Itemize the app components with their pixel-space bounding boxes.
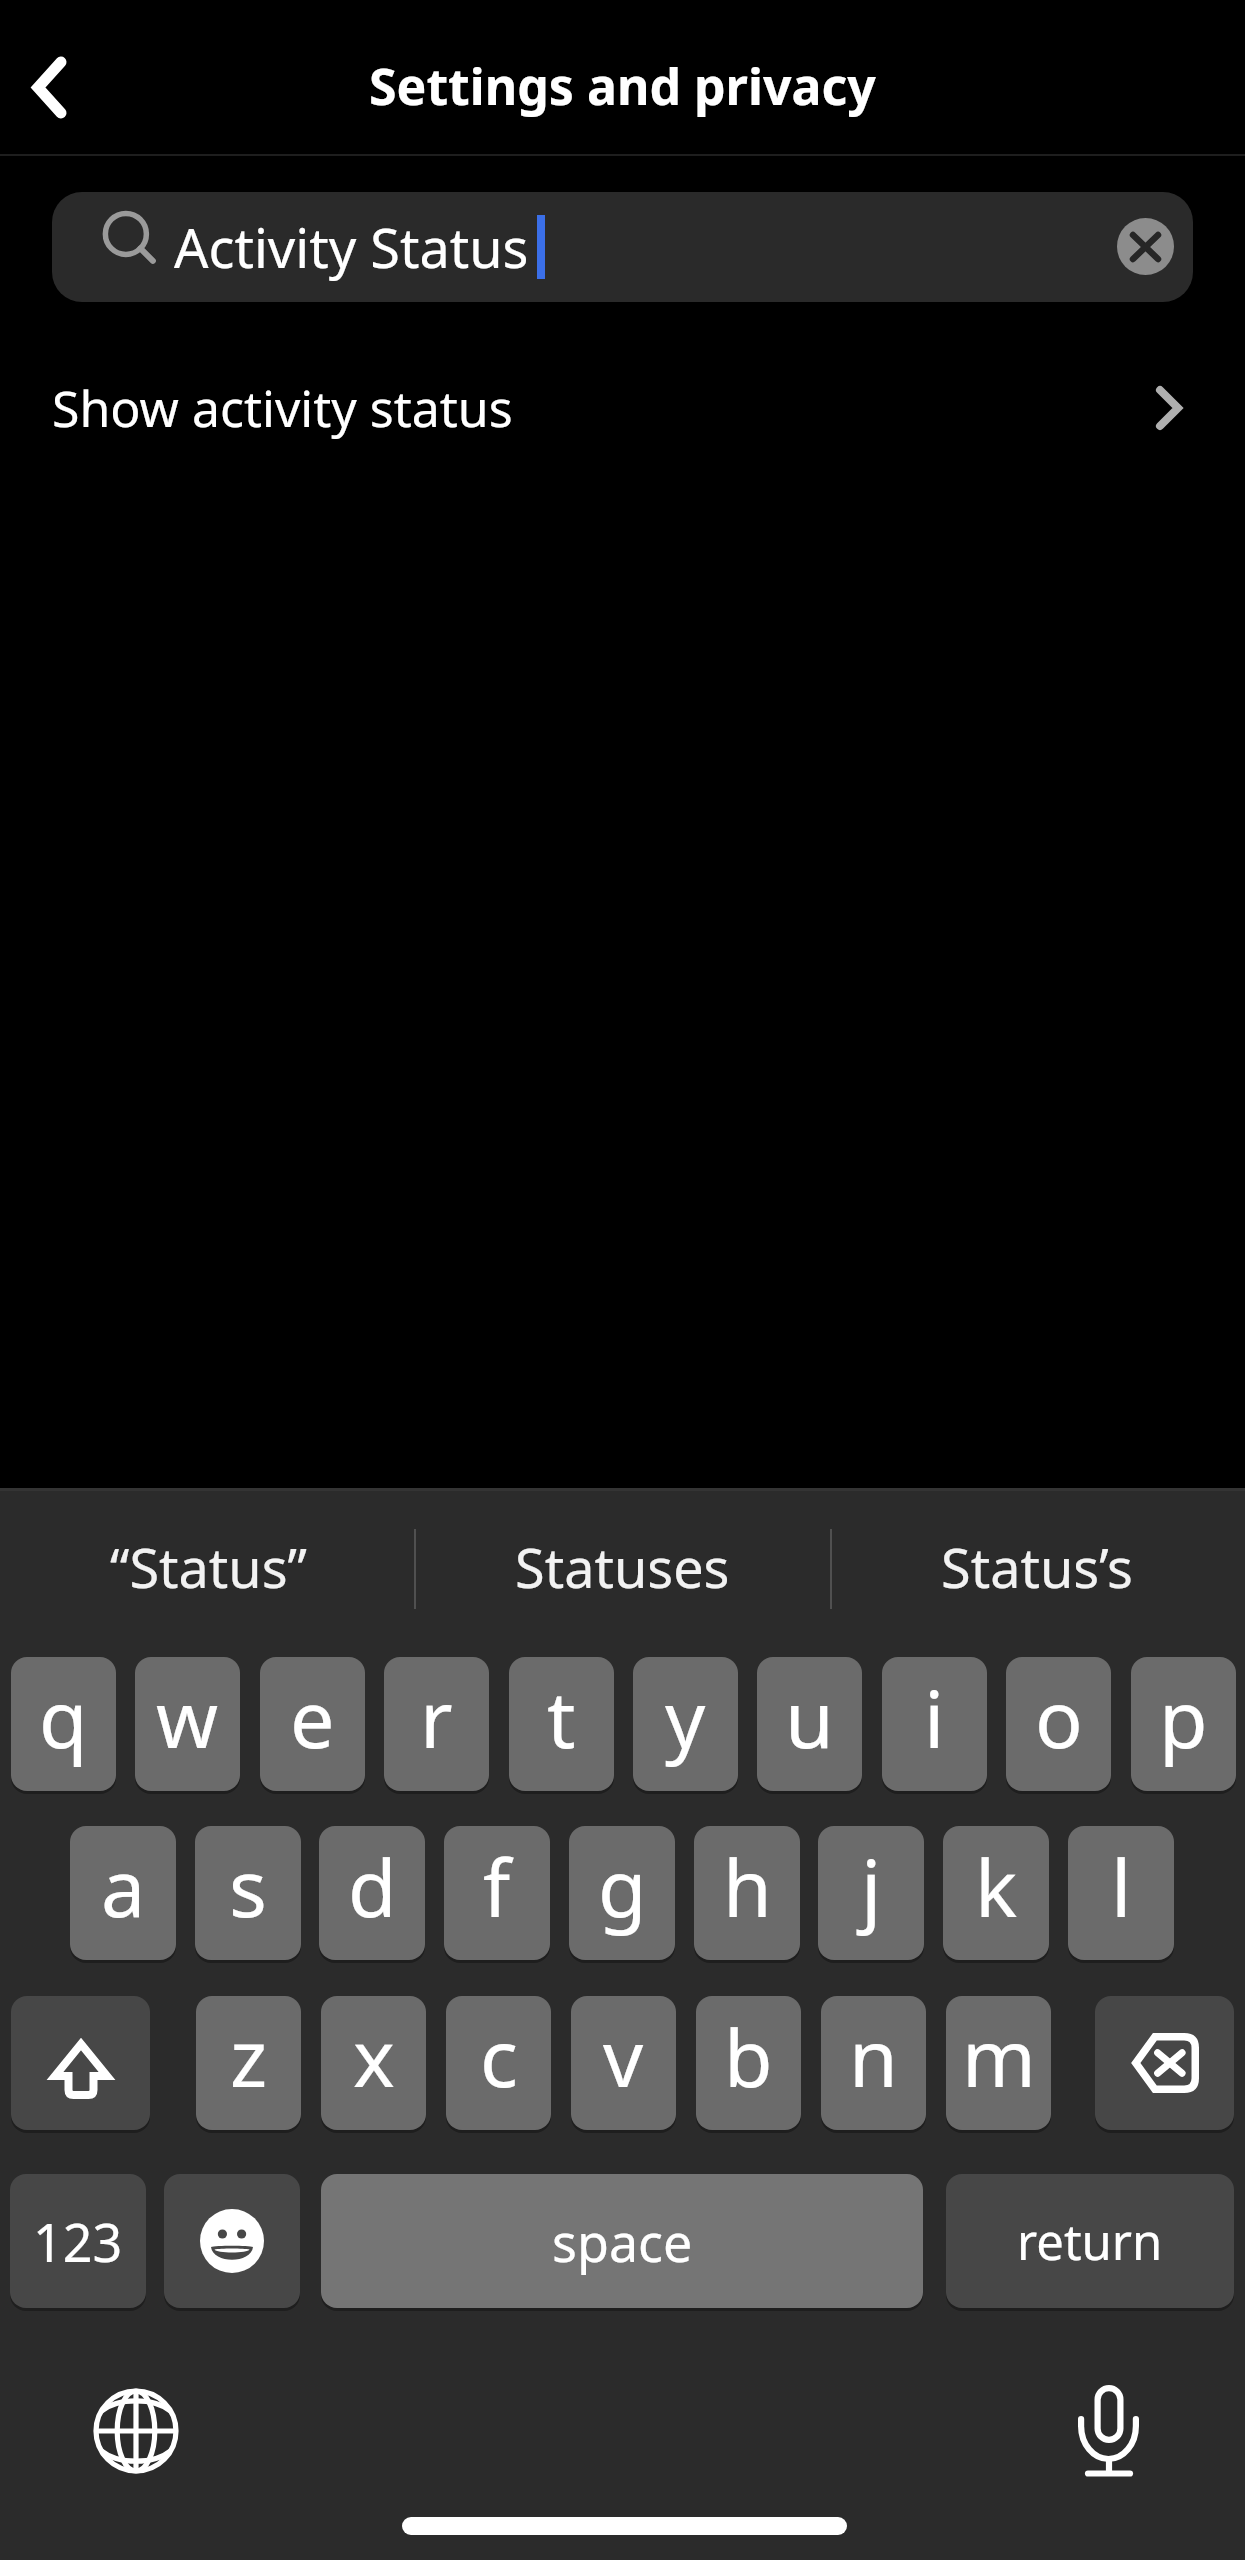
button[interactable]: Dictation [1063, 2385, 1155, 2477]
staticText: q [39, 1664, 88, 1772]
button[interactable]: Emoji keyboard [164, 2174, 300, 2308]
button[interactable]: n [821, 1996, 926, 2130]
staticText: f [483, 1833, 511, 1941]
button[interactable]: Clear text [1117, 218, 1174, 275]
button[interactable]: g [569, 1826, 675, 1960]
other: Backspace [1130, 2033, 1199, 2093]
button[interactable]: Back [1, 37, 97, 137]
button[interactable]: k [943, 1826, 1049, 1960]
staticText: j [861, 1833, 882, 1941]
staticText: Status’s [941, 1530, 1133, 1604]
button[interactable]: z [196, 1996, 301, 2130]
button[interactable]: Status’s [847, 1492, 1227, 1642]
staticText: b [724, 2003, 773, 2111]
other: Emoji keyboard [200, 2209, 265, 2274]
staticText: Activity Status [174, 210, 529, 284]
staticText: s [229, 1833, 267, 1941]
staticText: v [603, 2003, 644, 2111]
staticText: a [101, 1833, 146, 1941]
staticText: e [290, 1664, 335, 1772]
staticText: p [1159, 1664, 1208, 1772]
button[interactable]: y [633, 1657, 738, 1791]
staticText: t [547, 1664, 576, 1772]
staticText: c [480, 2003, 518, 2111]
staticText: 123 [33, 2206, 123, 2277]
button[interactable]: Show activity status [0, 346, 1245, 470]
button[interactable]: d [319, 1826, 425, 1960]
button[interactable]: l [1068, 1826, 1174, 1960]
staticText: n [849, 2003, 898, 2111]
button[interactable]: Backspace [1095, 1996, 1234, 2130]
staticText: Settings and privacy [369, 52, 876, 120]
staticText: d [348, 1833, 397, 1941]
button[interactable]: b [696, 1996, 801, 2130]
button[interactable]: return [946, 2174, 1234, 2308]
button[interactable]: t [509, 1657, 614, 1791]
other: Shift [51, 2033, 111, 2093]
button[interactable]: Activity Status [52, 192, 1193, 302]
staticText: x [353, 2003, 395, 2111]
staticText: o [1035, 1664, 1083, 1772]
button[interactable]: u [757, 1657, 862, 1791]
button[interactable]: v [571, 1996, 676, 2130]
button[interactable]: r [384, 1657, 489, 1791]
button[interactable]: q [11, 1657, 116, 1791]
button[interactable]: “Status” [18, 1492, 398, 1642]
button[interactable]: o [1006, 1657, 1111, 1791]
staticText: space [552, 2206, 693, 2277]
button[interactable]: i [882, 1657, 987, 1791]
button[interactable]: c [446, 1996, 551, 2130]
staticText: u [785, 1664, 834, 1772]
button[interactable]: w [135, 1657, 240, 1791]
staticText: z [230, 2003, 268, 2111]
button[interactable]: e [260, 1657, 365, 1791]
staticText: “Status” [110, 1530, 307, 1604]
staticText: i [924, 1664, 945, 1772]
button[interactable]: 123 [10, 2174, 146, 2308]
staticText: r [420, 1664, 453, 1772]
staticText: Statuses [515, 1530, 730, 1604]
staticText: Show activity status [52, 374, 513, 442]
button[interactable]: j [818, 1826, 924, 1960]
button[interactable]: p [1131, 1657, 1236, 1791]
staticText: l [1111, 1833, 1132, 1941]
button[interactable]: f [444, 1826, 550, 1960]
staticText: k [975, 1833, 1018, 1941]
button[interactable]: Shift [11, 1996, 150, 2130]
button[interactable]: space [321, 2174, 923, 2308]
staticText: m [962, 2003, 1036, 2111]
button[interactable]: m [946, 1996, 1051, 2130]
button[interactable]: s [195, 1826, 301, 1960]
button[interactable]: h [694, 1826, 800, 1960]
button[interactable]: x [321, 1996, 426, 2130]
staticText: h [723, 1833, 772, 1941]
staticText: w [156, 1664, 219, 1772]
staticText: return [1017, 2208, 1163, 2275]
staticText: g [598, 1833, 647, 1941]
button[interactable]: Change language [90, 2385, 182, 2477]
staticText: y [665, 1664, 706, 1772]
button[interactable]: a [70, 1826, 176, 1960]
button[interactable]: Statuses [432, 1492, 812, 1642]
